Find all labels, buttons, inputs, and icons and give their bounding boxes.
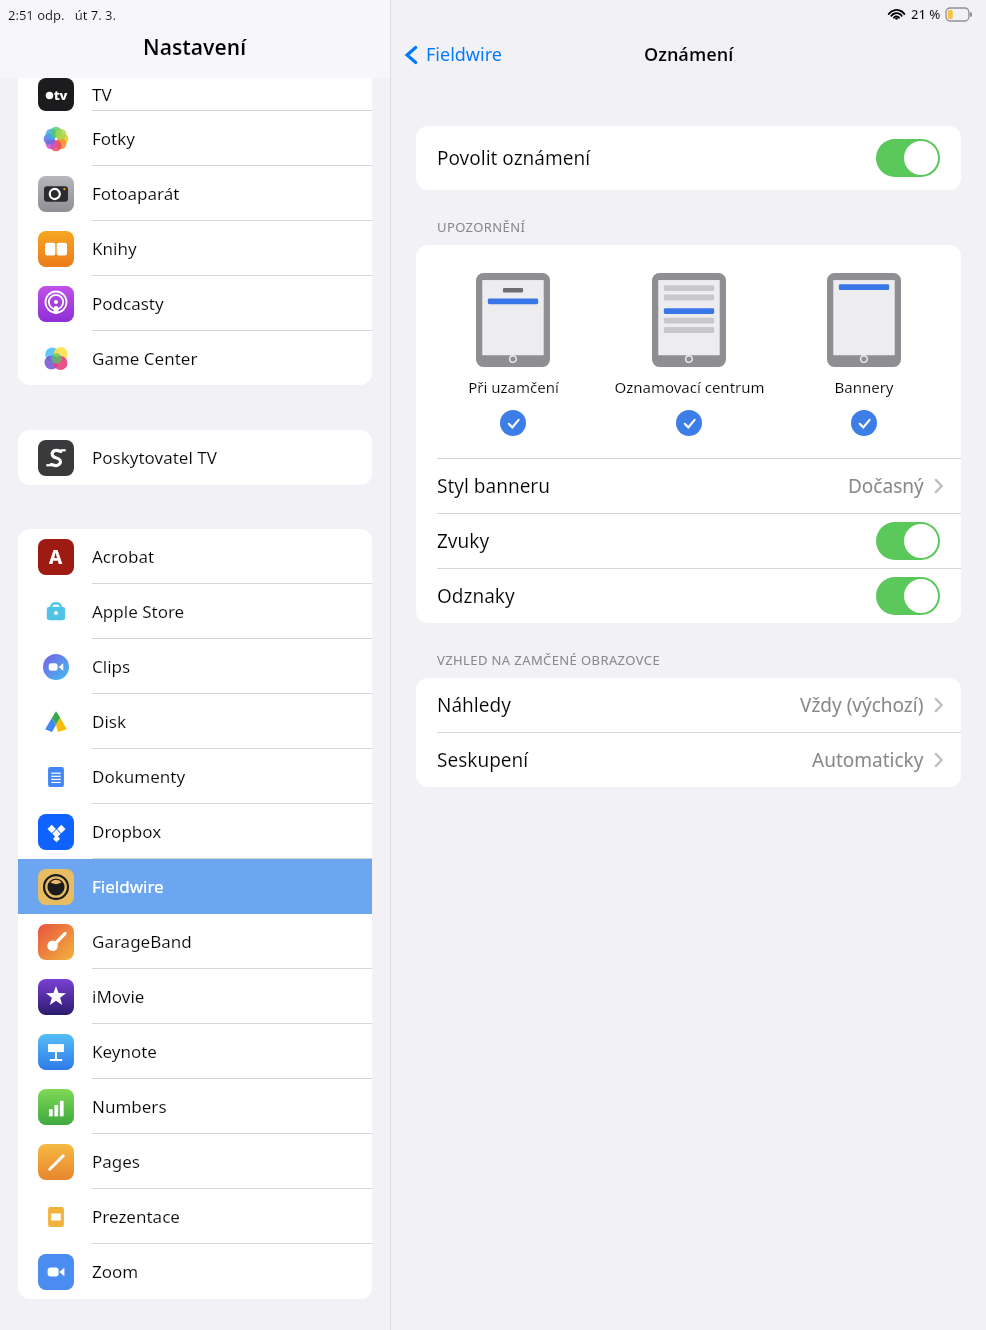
button[interactable]: Bannery bbox=[779, 273, 949, 436]
button[interactable]: Oznamovací centrum bbox=[604, 273, 774, 436]
staticText: Náhledy bbox=[437, 692, 800, 718]
button[interactable]: Podcasty bbox=[18, 276, 372, 331]
button[interactable]: Zoom bbox=[18, 1244, 372, 1299]
button[interactable]: Dropbox bbox=[18, 804, 372, 859]
button[interactable]: Toggle on bbox=[876, 577, 940, 615]
staticText: Keynote bbox=[92, 1040, 157, 1063]
staticText: Fieldwire bbox=[92, 875, 164, 898]
button[interactable]: Dokumenty bbox=[18, 749, 372, 804]
staticText: GarageBand bbox=[92, 930, 192, 953]
staticText: Dočasný bbox=[848, 473, 924, 499]
button[interactable]: Fotky bbox=[18, 111, 372, 166]
staticText: Fotky bbox=[92, 127, 135, 150]
staticText: Zvuky bbox=[437, 528, 876, 554]
button[interactable]: Knihy bbox=[18, 221, 372, 276]
staticText: 2:51 odp. út 7. 3. bbox=[8, 6, 116, 24]
button[interactable]: Při uzamčení bbox=[428, 273, 598, 436]
button[interactable]: Fieldwire bbox=[18, 859, 372, 914]
staticText: Seskupení bbox=[437, 747, 812, 773]
button[interactable]: GarageBand bbox=[18, 914, 372, 969]
staticText: 21 % bbox=[911, 5, 941, 23]
staticText: Knihy bbox=[92, 237, 137, 260]
staticText: Bannery bbox=[834, 377, 894, 397]
staticText: Dokumenty bbox=[92, 765, 186, 788]
staticText: Oznamovací centrum bbox=[614, 377, 765, 397]
staticText: Styl banneru bbox=[437, 473, 848, 499]
staticText: Clips bbox=[92, 655, 131, 678]
staticText: Odznaky bbox=[437, 583, 876, 609]
staticText: Disk bbox=[92, 710, 127, 733]
staticText: TV bbox=[92, 83, 112, 106]
button[interactable]: iMovie bbox=[18, 969, 372, 1024]
button[interactable]: Disk bbox=[18, 694, 372, 749]
button[interactable]: A bbox=[18, 529, 372, 584]
button[interactable]: Clips bbox=[18, 639, 372, 694]
button[interactable]: tv bbox=[18, 78, 372, 111]
button[interactable]: Seskupení bbox=[416, 733, 961, 787]
staticText: tv bbox=[54, 86, 68, 104]
staticText: Automaticky bbox=[812, 747, 924, 773]
staticText: Při uzamčení bbox=[468, 377, 559, 397]
button[interactable]: Prezentace bbox=[18, 1189, 372, 1244]
staticText: Oznámení bbox=[644, 42, 734, 67]
button[interactable]: Toggle on bbox=[876, 522, 940, 560]
button[interactable]: Fotoaparát bbox=[18, 166, 372, 221]
staticText: Numbers bbox=[92, 1095, 167, 1118]
button[interactable]: Apple Store bbox=[18, 584, 372, 639]
button[interactable]: Poskytovatel TV bbox=[18, 430, 372, 485]
button[interactable]: Pages bbox=[18, 1134, 372, 1189]
staticText: Prezentace bbox=[92, 1205, 180, 1228]
button[interactable]: Toggle on bbox=[876, 139, 940, 177]
staticText: Pages bbox=[92, 1150, 141, 1173]
staticText: A bbox=[49, 544, 63, 570]
staticText: VZHLED NA ZAMČENÉ OBRAZOVCE bbox=[437, 651, 661, 669]
staticText: Game Center bbox=[92, 347, 198, 370]
staticText: Vždy (výchozí) bbox=[800, 692, 924, 718]
button[interactable]: Povolit oznámení bbox=[416, 126, 961, 190]
staticText: Acrobat bbox=[92, 545, 155, 568]
button[interactable]: Náhledy bbox=[416, 678, 961, 732]
staticText: Zoom bbox=[92, 1260, 139, 1283]
button[interactable]: Zvuky bbox=[416, 514, 961, 568]
button[interactable]: Game Center bbox=[18, 331, 372, 385]
button[interactable]: Fieldwire bbox=[405, 42, 502, 67]
staticText: iMovie bbox=[92, 985, 145, 1008]
staticText: UPOZORNĚNÍ bbox=[437, 218, 526, 236]
staticText: Poskytovatel TV bbox=[92, 446, 217, 469]
staticText: Fieldwire bbox=[426, 42, 502, 67]
staticText: Nastavení bbox=[143, 33, 247, 62]
button[interactable]: Keynote bbox=[18, 1024, 372, 1079]
staticText: Dropbox bbox=[92, 820, 162, 843]
staticText: Povolit oznámení bbox=[437, 145, 876, 171]
button[interactable]: Numbers bbox=[18, 1079, 372, 1134]
button[interactable]: Styl banneru bbox=[416, 459, 961, 513]
staticText: Apple Store bbox=[92, 600, 185, 623]
staticText: Podcasty bbox=[92, 292, 164, 315]
button[interactable]: Odznaky bbox=[416, 569, 961, 623]
staticText: Fotoaparát bbox=[92, 182, 180, 205]
